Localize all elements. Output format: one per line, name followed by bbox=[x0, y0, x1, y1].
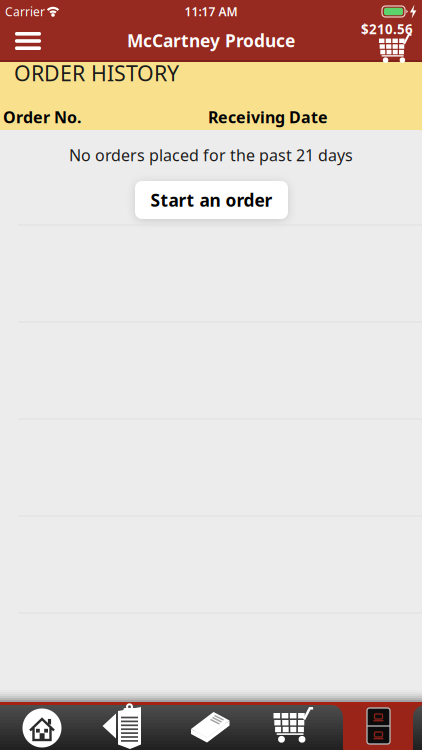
staticText: ORDER HISTORY bbox=[14, 59, 179, 87]
staticText: Receiving Date bbox=[208, 106, 328, 128]
staticText: Start an order bbox=[150, 188, 272, 211]
button[interactable]: Cart bbox=[355, 19, 419, 67]
button[interactable]: Home bbox=[2, 705, 82, 750]
staticText: Order No. bbox=[3, 106, 81, 128]
button[interactable]: Equipment bbox=[343, 703, 413, 748]
button[interactable]: Shopping cart bbox=[253, 702, 333, 747]
button[interactable]: Catalog bbox=[170, 705, 250, 750]
staticText: $210.56 bbox=[361, 20, 413, 38]
staticText: No orders placed for the past 21 days bbox=[69, 144, 353, 166]
button[interactable]: Menu bbox=[6, 24, 50, 58]
staticText: Carrier bbox=[5, 3, 45, 19]
button[interactable]: Orders bbox=[82, 704, 162, 749]
staticText: 11:17 AM bbox=[184, 3, 237, 19]
button[interactable]: Start an order bbox=[135, 181, 288, 219]
staticText: McCartney Produce bbox=[127, 29, 295, 52]
